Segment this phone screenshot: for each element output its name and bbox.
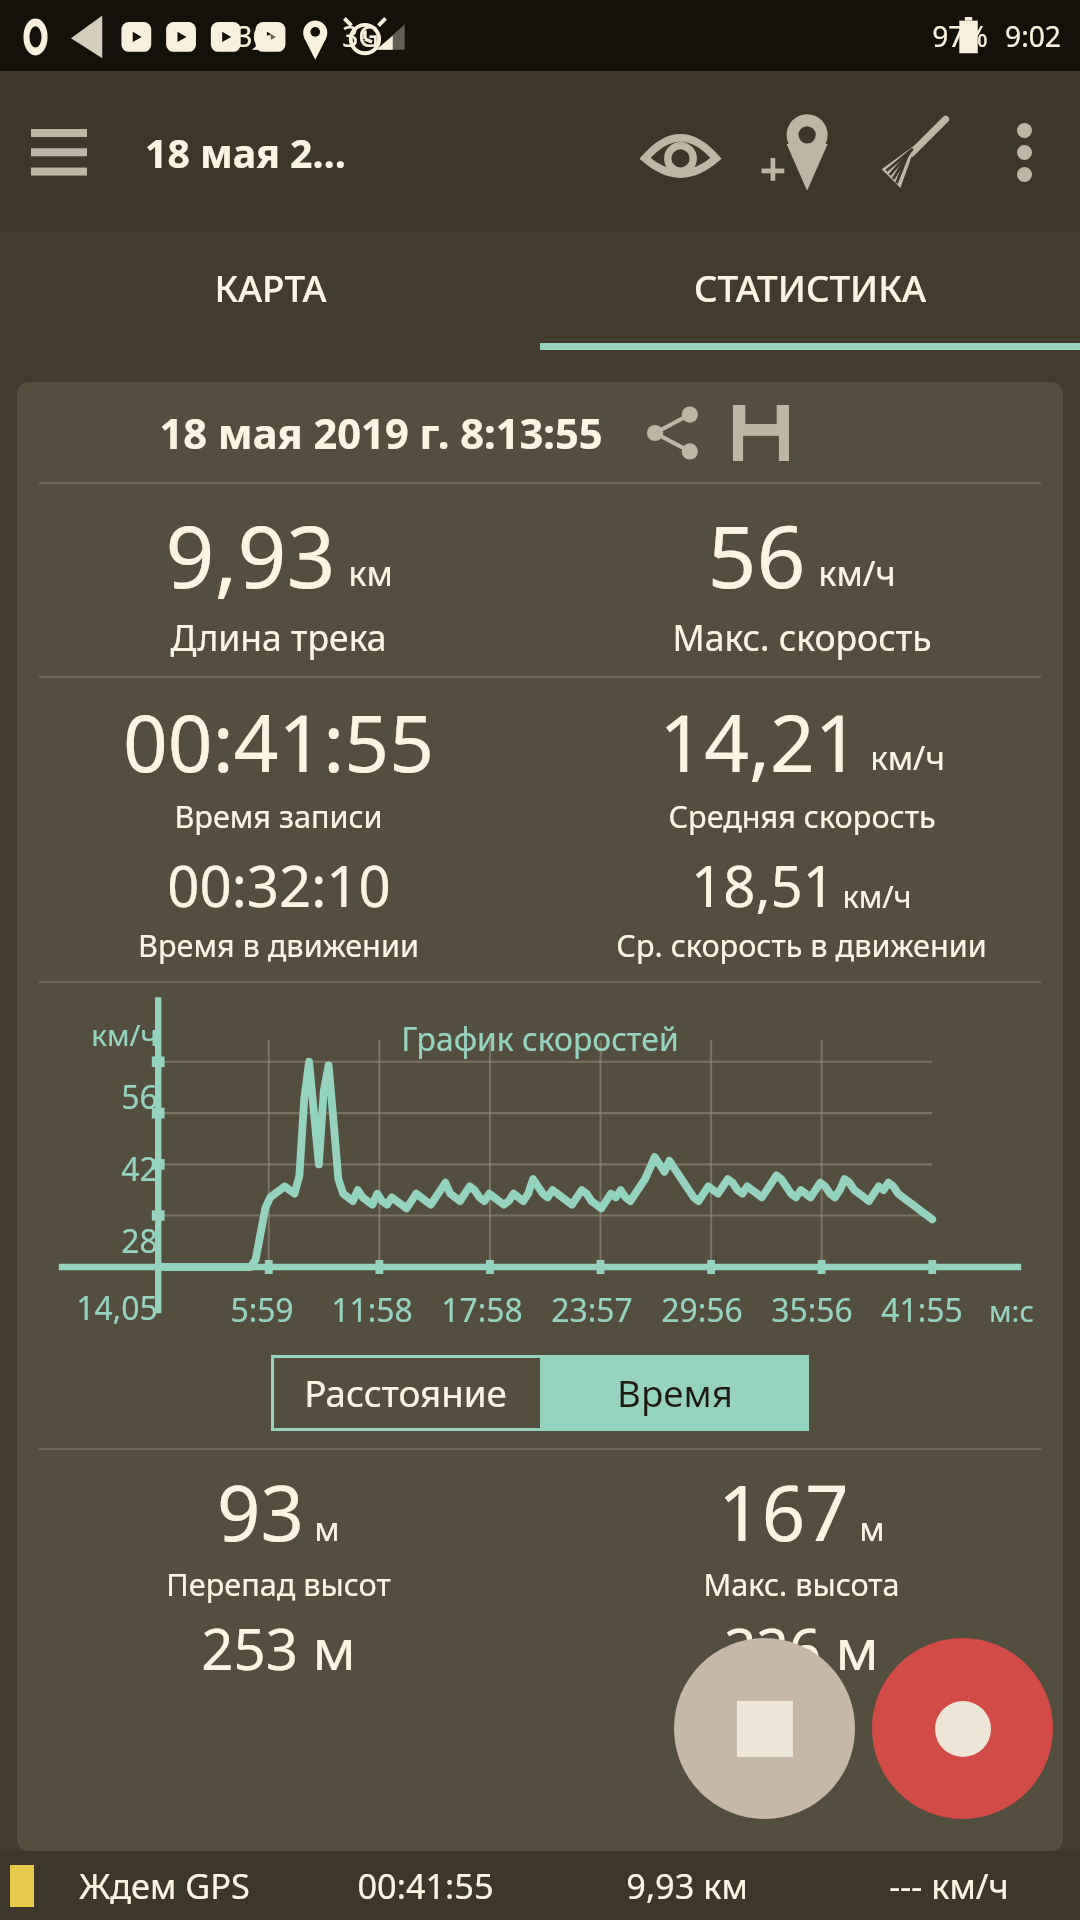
button[interactable]: КАРТА [0,233,540,343]
staticText: км/ч [818,549,896,596]
staticText: 56 [707,496,806,613]
staticText: 23:57 [551,1288,633,1331]
staticText: 93 [217,1460,304,1563]
staticText: Ср. скорость в движении [616,924,987,966]
staticText: 9,93 км [626,1862,748,1909]
button[interactable]: Record [872,1638,1053,1819]
staticText: м [859,1506,885,1551]
staticText: Время в движении [138,924,419,966]
staticText: 3G [342,17,379,55]
staticText: Время [617,1368,733,1418]
staticText: 9:02 [1005,17,1061,55]
staticText: км/ч [842,875,912,917]
staticText: м:с [989,1291,1034,1331]
staticText: 11:58 [331,1288,413,1331]
button[interactable]: Clear [857,93,975,211]
staticText: 00:32:10 [167,847,391,924]
staticText: 97% [932,17,988,55]
staticText: КАРТА [214,263,327,313]
staticText: --- км/ч [889,1862,1009,1909]
staticText: 28 [121,1219,158,1262]
staticText: 29:56 [661,1288,743,1331]
staticText: 253 м [201,1610,356,1687]
staticText: 9,93 [165,496,336,613]
staticText: 56 [121,1075,158,1118]
button[interactable]: Save [725,397,796,468]
staticText: 167 [718,1460,849,1563]
button[interactable]: Время [540,1355,809,1431]
staticText: 18 мая 2… [145,126,346,179]
staticText: Длина трека [170,613,387,661]
button[interactable]: Menu [0,93,118,211]
staticText: 42 [121,1147,158,1190]
button[interactable]: Show [621,93,739,211]
button[interactable]: Add waypoint [739,93,857,211]
staticText: График скоростей [401,1017,679,1060]
staticText: м [314,1506,340,1551]
staticText: 14,05 [76,1286,158,1329]
staticText: км [348,549,393,596]
staticText: 35:56 [771,1288,853,1331]
staticText: Расстояние [304,1368,507,1418]
staticText: Средняя скорость [668,795,936,837]
staticText: 00:41:55 [123,688,434,795]
button[interactable]: Stop [674,1638,855,1819]
staticText: км/ч [91,1015,158,1055]
button[interactable]: More options [975,103,1073,201]
staticText: 336 м [724,1610,879,1687]
staticText: 17:58 [441,1288,523,1331]
staticText: 41:55 [881,1288,963,1331]
staticText: км/ч [870,735,945,780]
staticText: Время записи [174,795,383,837]
staticText: Перепад высот [166,1563,391,1605]
button[interactable]: Расстояние [271,1355,540,1431]
button[interactable]: Share [637,397,708,468]
staticText: 5:59 [230,1288,294,1331]
staticText: 14,21 [659,688,860,795]
staticText: Ждем GPS [79,1862,250,1909]
staticText: Макс. высота [703,1563,900,1605]
staticText: СТАТИСТИКА [694,263,926,313]
staticText: 00:41:55 [357,1862,494,1909]
staticText: 3G [236,17,273,55]
button[interactable]: СТАТИСТИКА [540,233,1080,343]
staticText: 18 мая 2019 г. 8:13:55 [159,404,603,461]
staticText: 18,51 [691,847,835,924]
staticText: Макс. скорость [672,613,932,661]
